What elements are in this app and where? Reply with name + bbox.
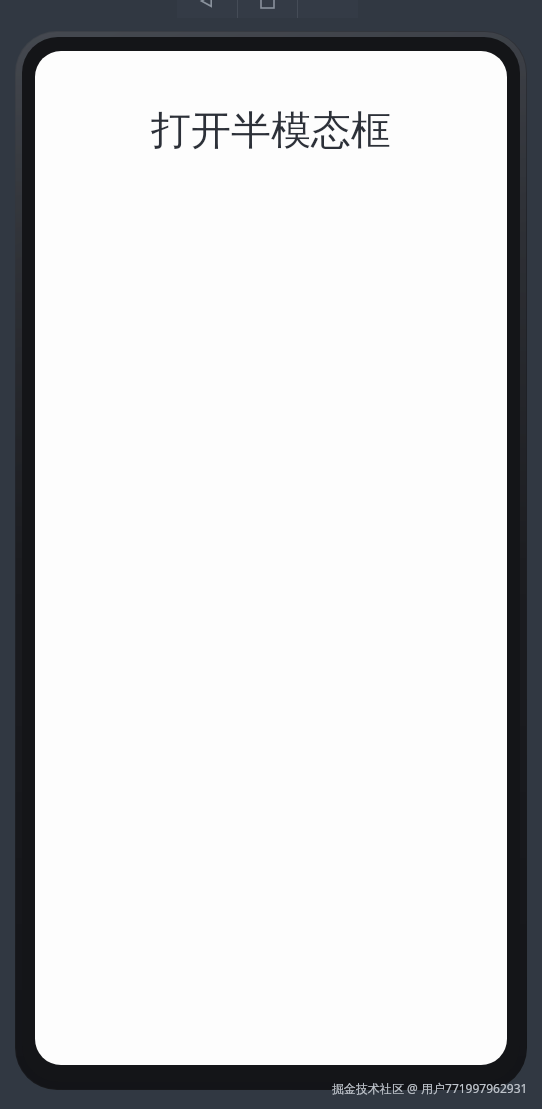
button[interactable]: 打开半模态框 <box>141 101 401 159</box>
button[interactable]: Back <box>177 0 237 18</box>
staticText: 打开半模态框 <box>151 105 391 155</box>
button[interactable]: Recents <box>238 0 297 18</box>
staticText: 掘金技术社区 @ 用户771997962931 <box>332 1080 528 1096</box>
